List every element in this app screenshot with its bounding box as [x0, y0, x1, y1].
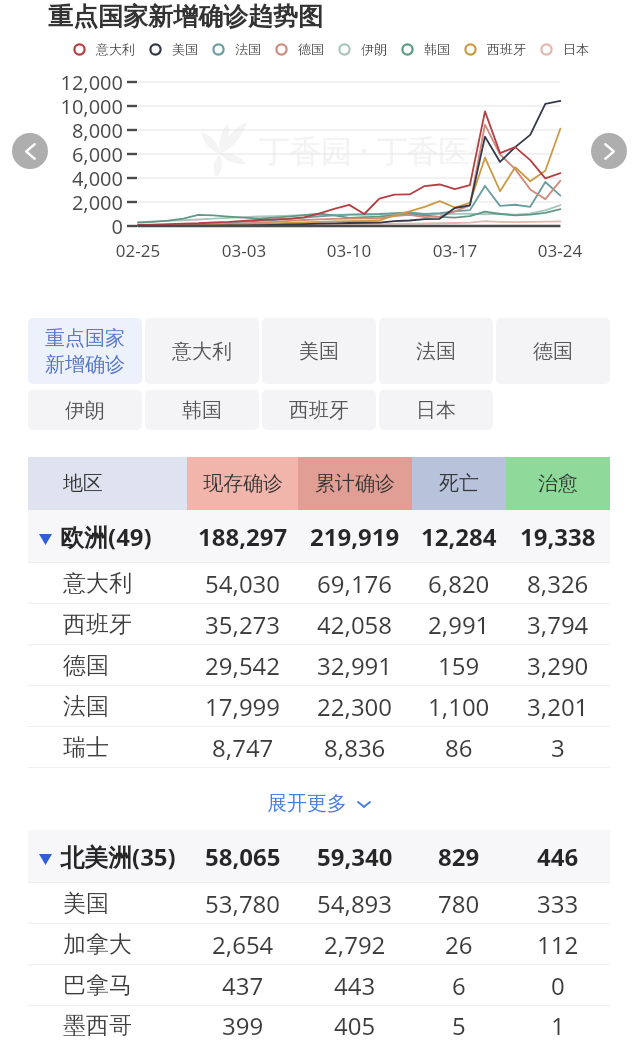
staticText: 6,000	[13, 141, 123, 168]
staticText: 德国	[298, 41, 324, 57]
button[interactable]: 德国	[496, 318, 610, 384]
button[interactable]: Next chart	[591, 133, 627, 169]
staticText: 德国	[63, 651, 109, 680]
button[interactable]: 美国	[28, 883, 610, 923]
staticText: 6,820	[428, 567, 490, 600]
staticText: 北美洲(35)	[60, 840, 176, 873]
staticText: 8,000	[13, 117, 123, 144]
staticText: 26	[445, 928, 473, 961]
staticText: 399	[222, 1009, 264, 1042]
staticText: 69,176	[317, 567, 393, 600]
staticText: 188,297	[198, 520, 288, 553]
staticText: 伊朗	[361, 41, 387, 57]
staticText: 54,893	[317, 887, 393, 920]
button[interactable]: 日本	[379, 390, 493, 430]
staticText: 意大利	[96, 41, 135, 57]
staticText: 2,000	[13, 189, 123, 216]
button[interactable]: 意大利	[145, 318, 259, 384]
button[interactable]: 巴拿马	[28, 965, 610, 1005]
staticText: 2,654	[212, 928, 274, 961]
staticText: 02-25	[98, 239, 178, 262]
staticText: 韩国	[182, 398, 222, 423]
button[interactable]: 展开更多	[28, 768, 610, 830]
staticText: 现存确诊	[203, 471, 283, 496]
staticText: 1	[551, 1009, 565, 1042]
staticText: 112	[537, 928, 579, 961]
button[interactable]: 治愈	[506, 457, 610, 510]
button[interactable]: 韩国	[145, 390, 259, 430]
staticText: 443	[334, 969, 376, 1002]
staticText: 3	[551, 731, 565, 764]
staticText: 446	[537, 840, 579, 873]
staticText: 54,030	[205, 567, 281, 600]
staticText: 42,058	[317, 608, 393, 641]
staticText: 美国	[299, 339, 339, 364]
staticText: 32,991	[317, 649, 393, 682]
button[interactable]: 加拿大	[28, 924, 610, 964]
staticText: 死亡	[439, 471, 479, 496]
staticText: 治愈	[538, 471, 578, 496]
button[interactable]: 法国	[28, 686, 610, 726]
button[interactable]: 地区	[28, 457, 187, 510]
staticText: 17,999	[205, 690, 281, 723]
staticText: 10,000	[13, 93, 123, 120]
button[interactable]: 西班牙	[28, 604, 610, 644]
staticText: 1,100	[428, 690, 490, 723]
staticText: 03-24	[520, 239, 600, 262]
staticText: 53,780	[205, 887, 281, 920]
staticText: 22,300	[317, 690, 393, 723]
staticText: 西班牙	[63, 610, 132, 639]
staticText: 12,284	[421, 520, 497, 553]
staticText: 8,836	[324, 731, 386, 764]
staticText: 日本	[416, 398, 456, 423]
staticText: 333	[537, 887, 579, 920]
staticText: 西班牙	[487, 41, 526, 57]
staticText: 8,747	[212, 731, 274, 764]
button[interactable]: 死亡	[412, 457, 506, 510]
button[interactable]: 瑞士	[28, 727, 610, 767]
button[interactable]: 现存确诊	[187, 457, 298, 510]
button[interactable]: 北美洲(35)	[28, 830, 610, 882]
staticText: 6	[452, 969, 466, 1002]
staticText: 3,794	[527, 608, 589, 641]
button[interactable]: 欧洲(49)	[28, 510, 610, 562]
staticText: 4,000	[13, 165, 123, 192]
button[interactable]: 墨西哥	[28, 1006, 610, 1045]
button[interactable]: 西班牙	[262, 390, 376, 430]
staticText: 219,919	[310, 520, 400, 553]
button[interactable]: 意大利	[28, 563, 610, 603]
staticText: 5	[452, 1009, 466, 1042]
button[interactable]: 重点国家 新增确诊	[28, 318, 142, 384]
staticText: 0	[13, 213, 123, 240]
staticText: 欧洲(49)	[60, 520, 152, 553]
staticText: 35,273	[205, 608, 281, 641]
staticText: 法国	[235, 41, 261, 57]
button[interactable]: 法国	[379, 318, 493, 384]
staticText: 159	[438, 649, 480, 682]
staticText: 86	[445, 731, 473, 764]
staticText: 405	[334, 1009, 376, 1042]
staticText: 德国	[533, 339, 573, 364]
staticText: 437	[222, 969, 264, 1002]
staticText: 瑞士	[63, 733, 109, 762]
staticText: 重点国家 新增确诊	[45, 326, 125, 377]
staticText: 墨西哥	[63, 1011, 132, 1040]
staticText: 8,326	[527, 567, 589, 600]
staticText: 伊朗	[65, 398, 105, 423]
staticText: 12,000	[13, 69, 123, 96]
button[interactable]: 德国	[28, 645, 610, 685]
staticText: 展开更多	[267, 791, 347, 816]
button[interactable]: Previous chart	[12, 133, 48, 169]
button[interactable]: 伊朗	[28, 390, 142, 430]
staticText: 2,991	[428, 608, 490, 641]
button[interactable]: 美国	[262, 318, 376, 384]
staticText: 韩国	[424, 41, 450, 57]
staticText: 西班牙	[289, 398, 349, 423]
staticText: 累计确诊	[315, 471, 395, 496]
staticText: 美国	[172, 41, 198, 57]
staticText: 59,340	[317, 840, 393, 873]
staticText: 2,792	[324, 928, 386, 961]
staticText: 法国	[416, 339, 456, 364]
button[interactable]: 累计确诊	[298, 457, 412, 510]
staticText: 美国	[63, 889, 109, 918]
